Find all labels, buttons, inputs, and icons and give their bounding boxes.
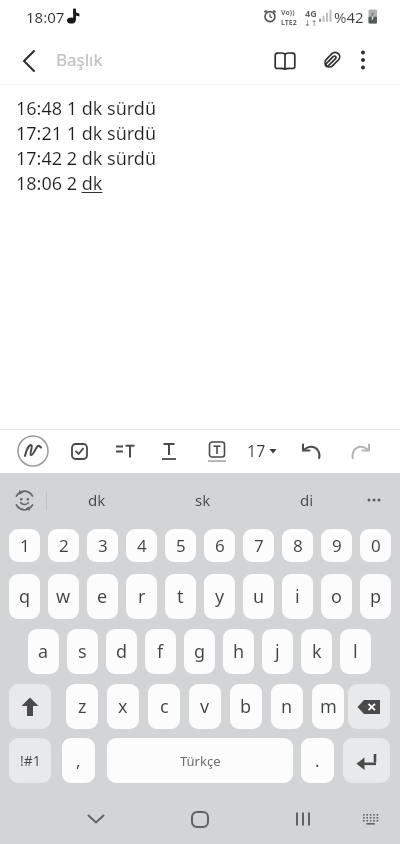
button[interactable]: 9 <box>321 529 352 562</box>
button[interactable]: y <box>204 574 235 619</box>
button[interactable]: u <box>243 574 274 619</box>
button[interactable]: t <box>165 574 196 619</box>
button[interactable]: f <box>145 629 176 674</box>
button[interactable]: di <box>262 479 352 521</box>
button[interactable]: 3 <box>87 529 118 562</box>
staticText: k <box>312 639 322 664</box>
button[interactable]: !#1 <box>9 738 51 783</box>
button[interactable] <box>16 434 50 468</box>
button[interactable]: n <box>271 684 303 729</box>
button[interactable]: 0 <box>360 529 391 562</box>
staticText: g <box>194 639 206 664</box>
button[interactable]: r <box>126 574 157 619</box>
button[interactable]: d <box>106 629 137 674</box>
button[interactable]: 2 <box>48 529 79 562</box>
button[interactable]: 1 <box>9 529 40 562</box>
button[interactable] <box>62 434 96 468</box>
staticText: di <box>300 490 314 510</box>
button[interactable]: 8 <box>282 529 313 562</box>
staticText: h <box>233 639 245 664</box>
staticText: 3 <box>98 534 108 557</box>
button[interactable] <box>294 434 328 468</box>
button[interactable]: 6 <box>204 529 235 562</box>
button[interactable] <box>312 40 352 80</box>
button[interactable]: , <box>62 738 95 783</box>
button[interactable]: e <box>87 574 118 619</box>
button[interactable]: v <box>189 684 221 729</box>
staticText: u <box>253 584 265 609</box>
button[interactable]: o <box>321 574 352 619</box>
staticText: %42 <box>334 7 364 27</box>
button[interactable]: j <box>262 629 293 674</box>
button[interactable] <box>152 434 186 468</box>
staticText: 7 <box>254 534 264 557</box>
button[interactable] <box>12 44 46 78</box>
button[interactable]: h <box>223 629 254 674</box>
button[interactable]: q <box>9 574 40 619</box>
button[interactable]: Türkçe <box>107 738 293 783</box>
button[interactable] <box>76 801 116 837</box>
button[interactable]: g <box>184 629 215 674</box>
staticText: i <box>295 584 300 609</box>
staticText: 6 <box>215 534 225 557</box>
button[interactable] <box>108 434 142 468</box>
button[interactable] <box>9 684 51 729</box>
button[interactable]: s <box>67 629 98 674</box>
button[interactable] <box>350 801 390 837</box>
button[interactable] <box>343 738 390 783</box>
button[interactable]: m <box>312 684 344 729</box>
staticText: dk <box>88 490 106 510</box>
staticText: v <box>200 694 210 719</box>
staticText: d <box>116 639 128 664</box>
staticText: 4 <box>137 534 147 557</box>
staticText: c <box>160 694 169 719</box>
button[interactable]: dk <box>52 479 142 521</box>
button[interactable]: k <box>301 629 332 674</box>
staticText: 2 <box>59 534 69 557</box>
button[interactable] <box>180 801 220 837</box>
button[interactable]: l <box>340 629 371 674</box>
staticText: r <box>138 584 146 609</box>
staticText: . <box>315 749 320 772</box>
staticText: !#1 <box>20 751 41 770</box>
staticText: Türkçe <box>180 752 221 770</box>
button[interactable] <box>348 684 390 729</box>
staticText: x <box>118 694 128 719</box>
staticText: p <box>370 584 382 609</box>
staticText: y <box>215 584 225 609</box>
button[interactable] <box>264 40 306 82</box>
staticText: LTE2 <box>281 18 297 28</box>
button[interactable] <box>200 434 234 468</box>
button[interactable]: a <box>28 629 59 674</box>
button[interactable] <box>283 801 323 837</box>
button[interactable]: 7 <box>243 529 274 562</box>
button[interactable]: x <box>107 684 139 729</box>
button[interactable]: i <box>282 574 313 619</box>
button[interactable]: 17 <box>242 434 282 468</box>
button[interactable] <box>5 484 44 517</box>
button[interactable]: . <box>301 738 334 783</box>
button[interactable]: z <box>66 684 98 729</box>
button[interactable]: 4 <box>126 529 157 562</box>
button[interactable]: w <box>48 574 79 619</box>
staticText: l <box>353 639 358 664</box>
staticText: , <box>76 749 81 772</box>
staticText: b <box>240 694 252 719</box>
staticText: q <box>19 584 31 609</box>
button[interactable] <box>356 479 392 521</box>
staticText: o <box>331 584 342 609</box>
button[interactable]: p <box>360 574 391 619</box>
staticText: 5 <box>176 534 186 557</box>
staticText: 0 <box>371 534 381 557</box>
button[interactable] <box>344 434 378 468</box>
button[interactable]: sk <box>158 479 248 521</box>
button[interactable] <box>343 40 383 80</box>
button[interactable]: c <box>148 684 180 729</box>
staticText: ↓↑ <box>304 19 318 28</box>
staticText: sk <box>195 490 211 510</box>
staticText: 18:06 2 dk <box>16 171 103 196</box>
button[interactable]: b <box>230 684 262 729</box>
staticText: 17:42 2 dk sürdü <box>16 146 157 171</box>
staticText: s <box>78 639 87 664</box>
button[interactable]: 5 <box>165 529 196 562</box>
